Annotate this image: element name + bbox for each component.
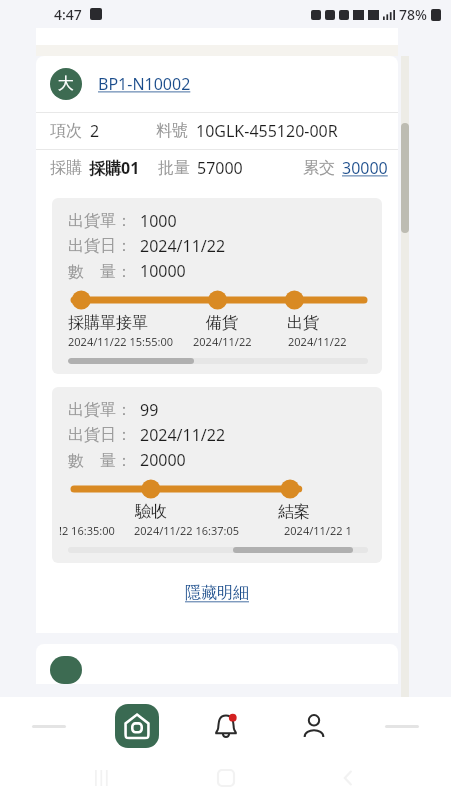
staticText: 2 bbox=[90, 120, 100, 142]
staticText: 出貨 bbox=[287, 313, 319, 333]
staticText: 4:47 bbox=[54, 5, 82, 24]
staticText: 20000 bbox=[140, 449, 186, 471]
staticText: 驗收 bbox=[135, 502, 167, 522]
staticText: 隱藏明細 bbox=[185, 583, 249, 603]
button[interactable]: Menu bbox=[381, 706, 423, 746]
staticText: 出貨單： bbox=[68, 400, 132, 420]
staticText: 10000 bbox=[140, 260, 186, 282]
staticText: 採購單接單 bbox=[68, 313, 148, 333]
staticText: 2024/11/22 bbox=[193, 334, 252, 349]
staticText: !2 16:35:00 bbox=[59, 523, 115, 538]
staticText: 數 量： bbox=[68, 260, 132, 282]
staticText: 出貨單： bbox=[68, 211, 132, 231]
staticText: 採購 bbox=[50, 158, 82, 178]
staticText: 2024/11/22 1 bbox=[284, 523, 352, 538]
staticText: 結案 bbox=[278, 502, 310, 522]
button[interactable]: 採購 bbox=[36, 150, 398, 186]
staticText: 2024/11/22 15:55:00 bbox=[68, 334, 174, 349]
staticText: 批量 bbox=[158, 158, 190, 178]
staticText: 2024/11/22 bbox=[288, 334, 347, 349]
staticText: 10GLK-455120-00R bbox=[196, 120, 338, 142]
button[interactable]: 出貨單： bbox=[52, 198, 382, 374]
staticText: 57000 bbox=[197, 157, 243, 179]
staticText: 備貨 bbox=[206, 313, 238, 333]
button[interactable]: Profile bbox=[292, 704, 336, 748]
staticText: 2024/11/22 16:37:05 bbox=[134, 523, 240, 538]
staticText: 2024/11/22 bbox=[140, 235, 226, 257]
staticText: 1000 bbox=[140, 210, 177, 232]
button[interactable]: Notifications bbox=[204, 704, 248, 748]
button[interactable]: More bbox=[28, 706, 70, 746]
staticText: 2024/11/22 bbox=[140, 424, 226, 446]
staticText: 累交 bbox=[303, 158, 335, 178]
button[interactable]: 大 bbox=[36, 56, 398, 112]
staticText: 30000 bbox=[342, 157, 388, 179]
staticText: 99 bbox=[140, 399, 159, 421]
button[interactable]: 項次 bbox=[36, 113, 398, 149]
staticText: 出貨日： bbox=[68, 425, 132, 445]
staticText: 料號 bbox=[156, 121, 188, 141]
staticText: 出貨日： bbox=[68, 236, 132, 256]
button[interactable] bbox=[36, 644, 398, 684]
staticText: 大 bbox=[58, 74, 74, 94]
staticText: 採購01 bbox=[89, 157, 140, 179]
button[interactable]: 出貨單： bbox=[52, 387, 382, 563]
button[interactable]: 隱藏明細 bbox=[36, 575, 398, 611]
staticText: 78% bbox=[399, 5, 427, 24]
staticText: BP1-N10002 bbox=[98, 73, 191, 95]
staticText: 項次 bbox=[50, 121, 82, 141]
staticText: 數 量： bbox=[68, 449, 132, 471]
button[interactable]: Home bbox=[206, 758, 246, 798]
button[interactable]: Home bbox=[115, 704, 159, 748]
